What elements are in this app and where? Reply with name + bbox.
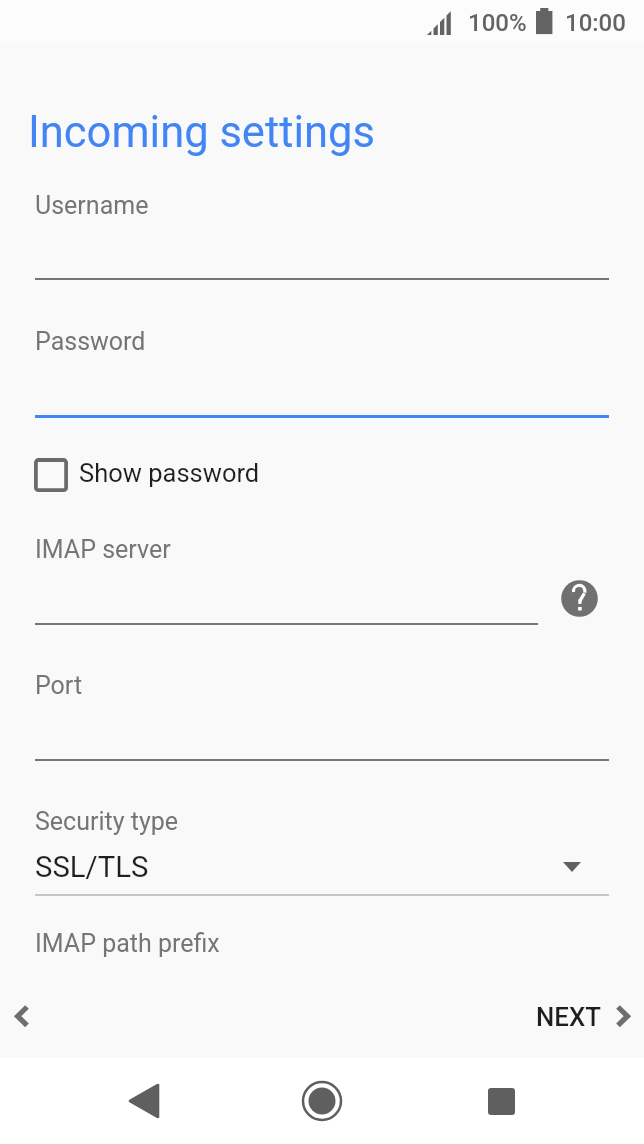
button[interactable]: Show password	[22, 446, 260, 500]
button[interactable]: IMAP path prefix	[0, 924, 644, 986]
staticText: Username	[35, 191, 149, 220]
staticText: Incoming settings	[28, 107, 375, 158]
staticText: Security type	[35, 807, 179, 836]
button[interactable]: IMAP server	[0, 530, 644, 626]
staticText: IMAP server	[35, 535, 171, 564]
staticText: NEXT	[536, 1002, 601, 1032]
button[interactable]: Security type: SSL/TLS	[0, 800, 644, 898]
button[interactable]: Home	[287, 1066, 357, 1136]
staticText: SSL/TLS	[35, 850, 149, 884]
staticText: 10:00	[565, 9, 626, 37]
staticText: Port	[35, 671, 83, 700]
staticText: 100%	[468, 9, 527, 37]
button[interactable]: NEXT	[518, 988, 631, 1046]
button[interactable]: Recent apps	[466, 1066, 536, 1136]
button[interactable]: Password	[0, 322, 644, 418]
button[interactable]: Port	[0, 666, 644, 762]
button[interactable]: Help	[554, 573, 605, 624]
button[interactable]: Previous	[0, 986, 58, 1044]
button[interactable]: Username	[0, 186, 644, 282]
staticText: Password	[35, 327, 146, 356]
staticText: IMAP path prefix	[35, 929, 220, 958]
button[interactable]: Back	[109, 1066, 179, 1136]
staticText: Show password	[79, 458, 260, 488]
